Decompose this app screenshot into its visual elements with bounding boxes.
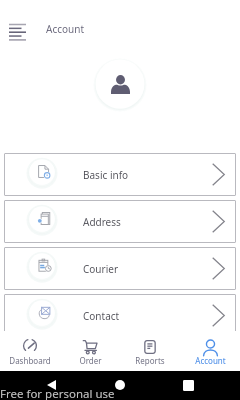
button[interactable]: Basic info — [4, 153, 236, 196]
staticText: Account — [195, 355, 226, 366]
button[interactable]: Account — [180, 331, 240, 371]
button[interactable]: Dashboard — [0, 331, 60, 371]
staticText: Free for personal use — [0, 386, 115, 400]
staticText: Courier — [83, 262, 119, 276]
button[interactable]: Address — [4, 200, 236, 243]
button[interactable]: Courier — [4, 247, 236, 290]
button[interactable]: Open navigation menu — [2, 16, 33, 49]
staticText: Contact — [83, 309, 120, 323]
button[interactable]: Order — [60, 331, 120, 371]
staticText: Order — [79, 355, 102, 366]
staticText: Basic info — [83, 168, 129, 182]
staticText: Dashboard — [9, 355, 51, 366]
staticText: Account — [46, 22, 85, 36]
button[interactable]: Reports — [120, 331, 180, 371]
button[interactable]: Contact — [4, 294, 236, 337]
staticText: Address — [83, 215, 121, 229]
staticText: Reports — [135, 355, 165, 366]
